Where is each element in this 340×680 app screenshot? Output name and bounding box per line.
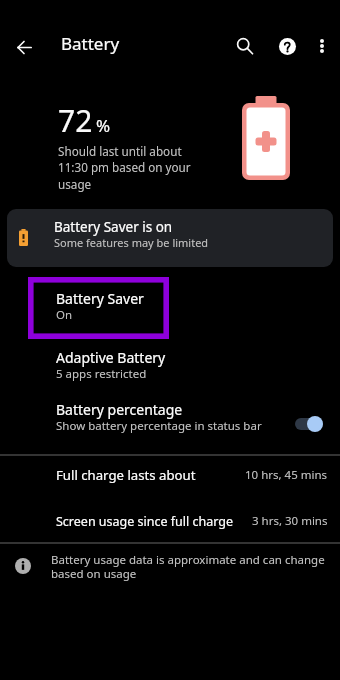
button[interactable]: Full charge lasts about — [0, 456, 340, 494]
staticText: Should last until about 11:30 pm based o… — [58, 143, 210, 193]
staticText: Battery Saver is on — [54, 218, 173, 236]
button[interactable]: Search — [225, 26, 265, 66]
staticText: Full charge lasts about — [56, 466, 196, 484]
staticText: Screen usage since full charge — [56, 513, 234, 530]
button[interactable]: Screen usage since full charge — [0, 502, 340, 540]
button[interactable]: Help — [267, 26, 307, 66]
button[interactable]: Battery Saver — [0, 281, 340, 335]
staticText: 3 hrs, 30 mins — [252, 513, 328, 529]
staticText: Battery percentage — [56, 400, 183, 419]
staticText: Battery usage data is approximate and ca… — [51, 552, 326, 581]
staticText: Adaptive Battery — [56, 348, 166, 367]
button[interactable]: More options — [302, 26, 340, 66]
button[interactable]: Battery Saver is on — [7, 209, 333, 267]
staticText: % — [96, 114, 111, 137]
button[interactable]: Battery percentage — [0, 392, 340, 446]
staticText: On — [56, 307, 73, 323]
button[interactable]: Battery percentage, on — [287, 409, 331, 439]
staticText: 10 hrs, 45 mins — [245, 467, 328, 483]
staticText: Some features may be limited — [54, 235, 209, 250]
staticText: 72 — [58, 100, 93, 141]
staticText: 5 apps restricted — [56, 366, 147, 382]
button[interactable]: Adaptive Battery — [0, 340, 340, 394]
button[interactable]: Back — [4, 27, 44, 67]
staticText: Battery — [61, 32, 120, 55]
staticText: Battery Saver — [56, 289, 144, 308]
staticText: Show battery percentage in status bar — [56, 418, 262, 434]
